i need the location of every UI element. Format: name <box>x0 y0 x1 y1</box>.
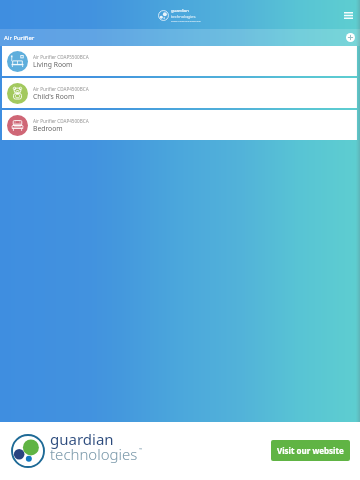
staticText: technologies <box>50 444 138 464</box>
staticText: Air Purifier CDAP5500BCA <box>33 54 89 60</box>
staticText: creating a better home environment™ <box>171 20 202 22</box>
button[interactable]: Air Purifier CDAP5500BCA <box>2 46 357 76</box>
staticText: Child's Room <box>33 92 75 101</box>
button[interactable]: Add device <box>346 33 355 42</box>
button[interactable]: Air Purifier CDAP4500BCA <box>2 78 357 108</box>
staticText: guardian <box>171 8 189 14</box>
staticText: guardian <box>50 429 114 449</box>
staticText: ™ <box>139 447 143 452</box>
button[interactable]: Menu <box>339 6 357 24</box>
button[interactable]: Air Purifier CDAP4500BCA <box>2 110 357 140</box>
staticText: Air Purifier CDAP4500BCA <box>33 118 89 124</box>
staticText: Air Purifier CDAP4500BCA <box>33 86 89 92</box>
staticText: Bedroom <box>33 124 63 133</box>
staticText: Living Room <box>33 60 73 69</box>
button[interactable]: Visit our website <box>271 440 350 461</box>
staticText: Air Purifier <box>4 34 35 42</box>
staticText: technologies <box>171 14 196 20</box>
staticText: Visit our website <box>277 445 344 456</box>
